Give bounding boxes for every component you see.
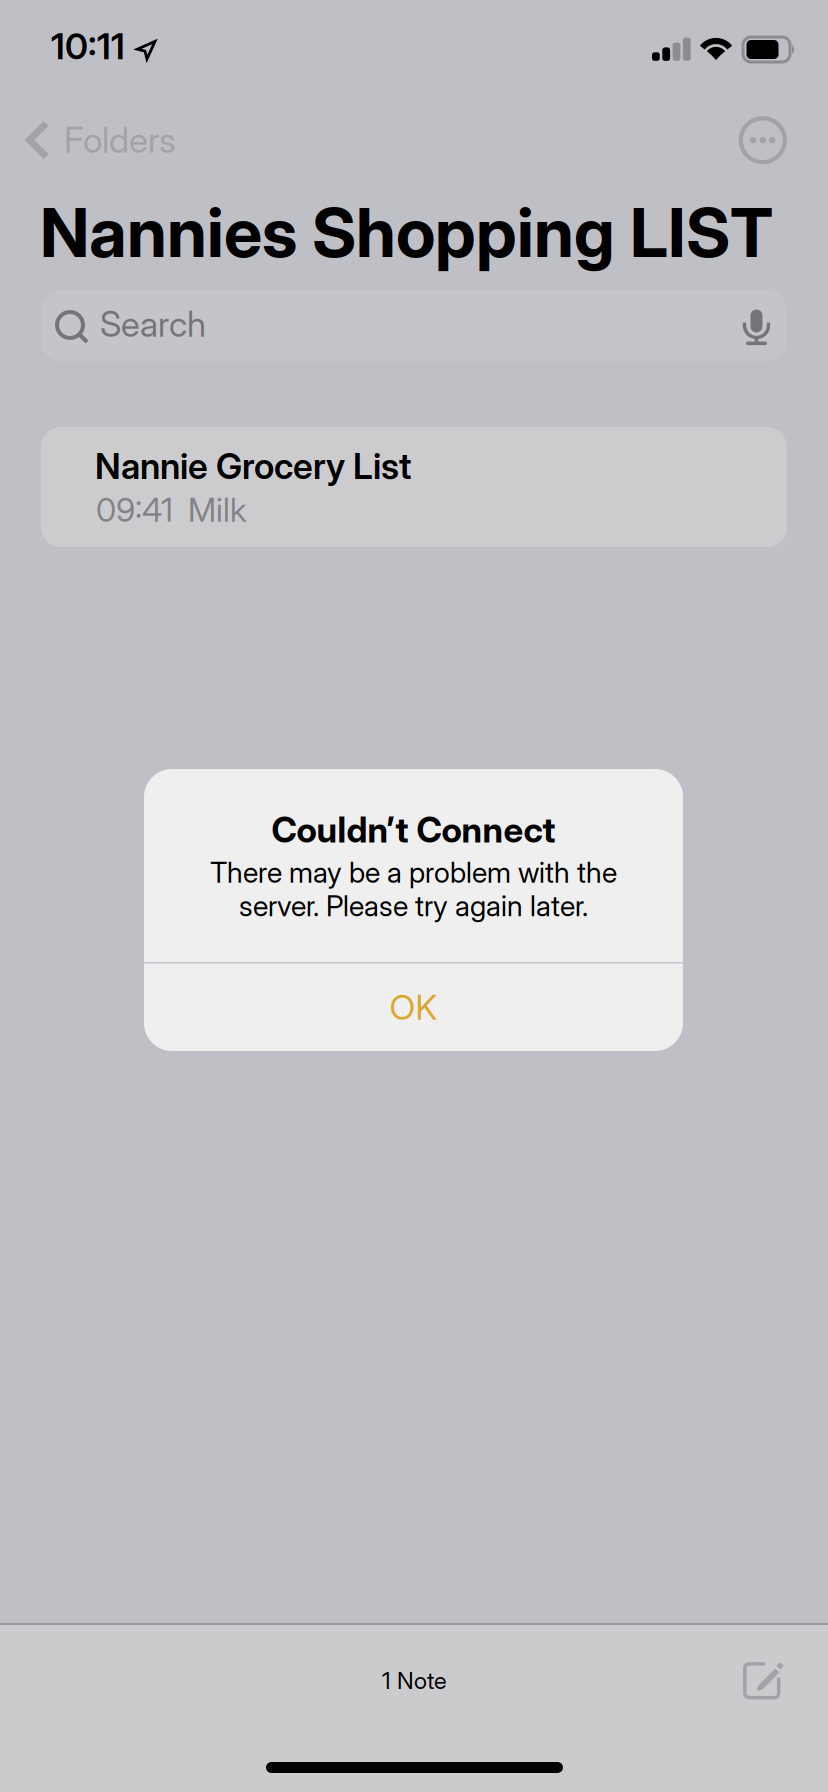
staticText: OK [389,987,437,1028]
staticText: Nannie Grocery List [95,444,411,487]
staticText: Nannies Shopping LIST [40,191,773,273]
button[interactable]: More [719,102,807,178]
button[interactable]: Nannie Grocery List [41,427,787,547]
staticText: Search [100,303,206,345]
staticText: 10:11 [51,24,125,68]
staticText: 1 Note [382,1666,447,1695]
button[interactable]: OK [144,963,683,1051]
staticText: Couldn’t Connect [271,808,555,851]
button[interactable]: Folders [0,102,202,178]
staticText: There may be a problem with the [210,855,617,890]
staticText: server. Please try again later. [239,889,588,923]
staticText: Milk [188,490,247,530]
button[interactable]: New note [721,1644,806,1718]
staticText: Folders [64,119,176,161]
staticText: 09:41 [96,490,173,530]
button[interactable]: Search [41,290,787,361]
